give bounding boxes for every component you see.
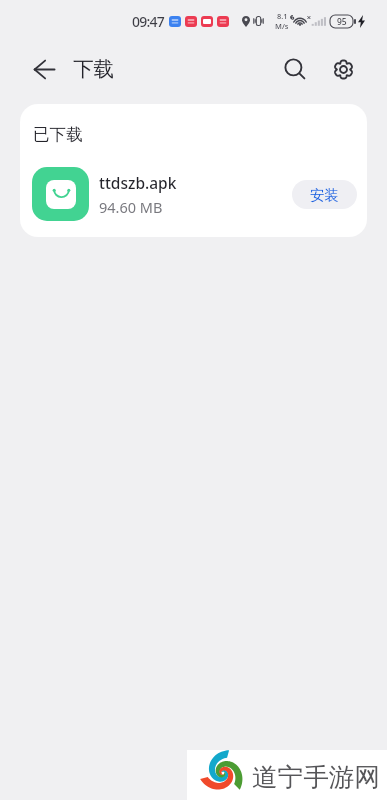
button[interactable]: 安装 [292,180,357,209]
staticText: 下载 [73,56,114,82]
staticText: 8.1 [277,11,288,21]
staticText: M/s [275,21,289,31]
staticText: ttdszb.apk [99,172,177,193]
button[interactable]: Search [279,53,311,85]
staticText: 道宁手游网 [252,761,380,793]
staticText: 94.60 MB [99,197,163,217]
staticText: 95 [337,16,347,28]
button[interactable]: Settings [327,53,359,85]
button[interactable]: Back [27,52,61,86]
button[interactable]: ttdszb.apk [20,144,367,206]
staticText: 09:47 [132,12,164,31]
staticText: 已下载 [33,124,83,145]
staticText: 安装 [310,186,339,204]
